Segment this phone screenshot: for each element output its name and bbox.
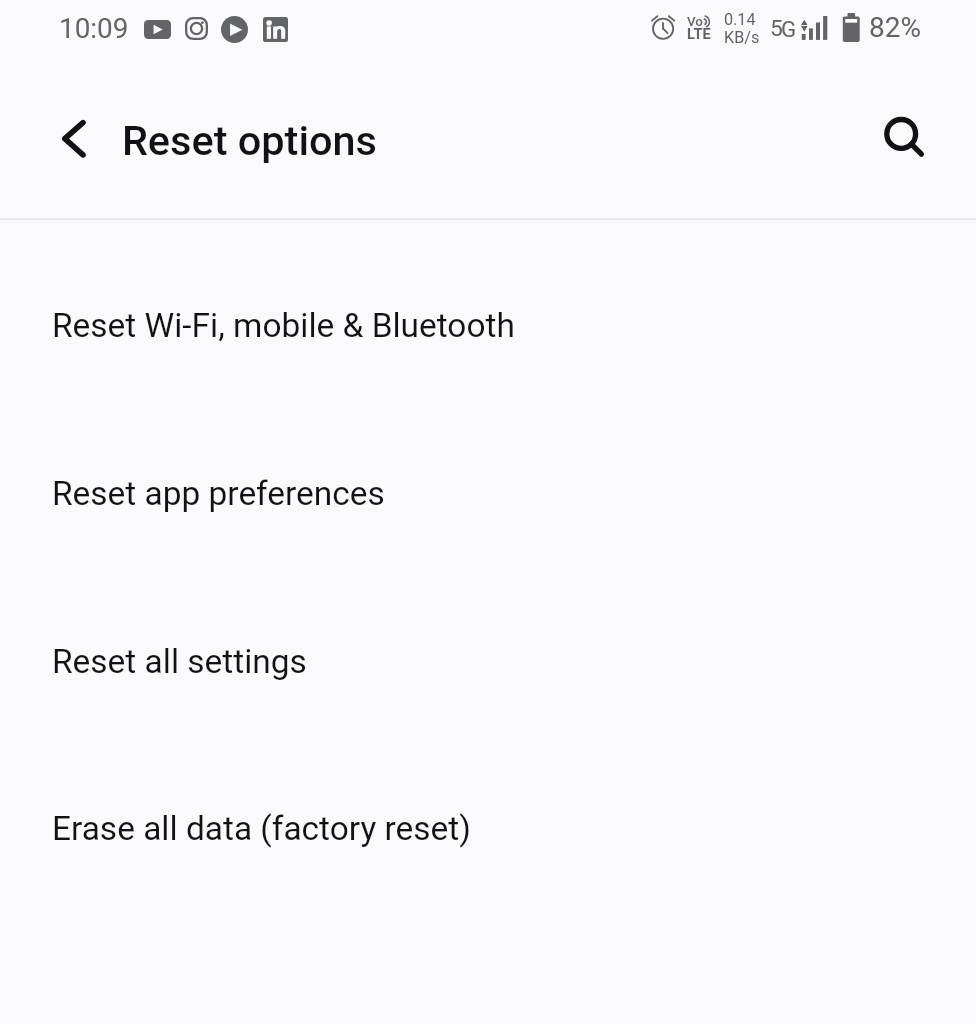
staticText: Reset all settings <box>52 642 307 681</box>
staticText: Reset options <box>122 117 377 165</box>
staticText: Vo <box>687 14 703 30</box>
button[interactable]: Erase all data (factory reset) <box>0 747 976 915</box>
button[interactable]: Navigate up <box>44 106 100 162</box>
staticText: 10:09 <box>59 12 129 45</box>
staticText: 82% <box>869 11 921 44</box>
staticText: KB/s <box>724 28 760 47</box>
staticText: Reset app preferences <box>52 474 385 513</box>
staticText: Erase all data (factory reset) <box>52 809 471 848</box>
button[interactable]: Reset Wi-Fi, mobile & Bluetooth <box>0 244 976 412</box>
staticText: G <box>781 16 797 42</box>
button[interactable]: Reset all settings <box>0 580 976 748</box>
button[interactable]: Reset app preferences <box>0 412 976 580</box>
button[interactable]: Search <box>876 108 932 164</box>
staticText: LTE <box>687 25 711 42</box>
staticText: 0.14 <box>724 10 756 29</box>
staticText: Reset Wi-Fi, mobile & Bluetooth <box>52 306 515 345</box>
staticText: 5 <box>770 15 783 42</box>
